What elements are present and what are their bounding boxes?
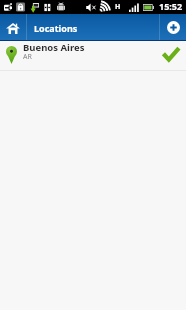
staticText: 15:52 xyxy=(159,0,183,12)
staticText: Locations xyxy=(34,22,78,34)
staticText: H xyxy=(115,2,121,12)
button[interactable]: Add location xyxy=(160,14,186,40)
staticText: Buenos Aires xyxy=(23,41,85,54)
staticText: AR xyxy=(23,52,32,62)
button[interactable]: Home xyxy=(0,14,26,40)
button[interactable]: Buenos Aires xyxy=(0,41,186,70)
button[interactable]: Selected xyxy=(154,41,186,70)
